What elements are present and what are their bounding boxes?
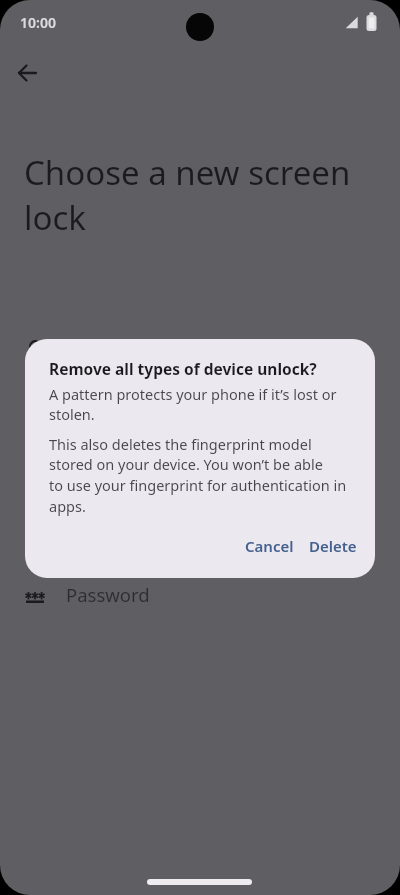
button[interactable]: Delete [301,529,367,561]
staticText: Password [66,582,150,607]
button[interactable]: Cancel [233,529,313,561]
staticText: Remove all types of device unlock? [49,358,317,379]
staticText: A pattern protects your phone if it’s lo… [49,384,337,425]
button[interactable]: Password [0,574,400,622]
staticText: Delete [309,536,357,556]
staticText: This also deletes the fingerprint model … [49,434,347,517]
staticText: Choose a new screen lock [24,150,351,240]
staticText: 10:00 [20,13,56,32]
staticText: Cancel [245,536,294,556]
button[interactable] [13,59,41,87]
